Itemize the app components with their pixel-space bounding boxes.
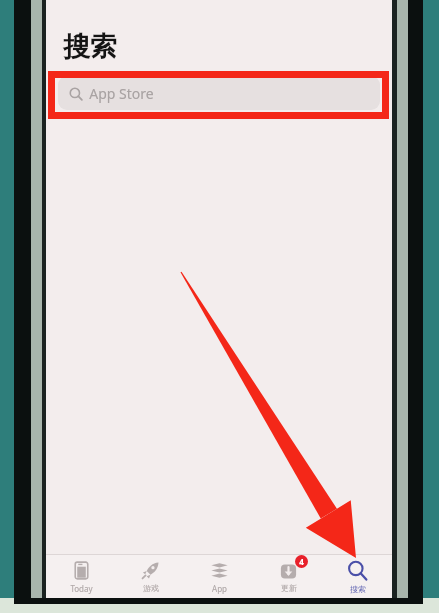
button[interactable]: Games [116,554,185,600]
staticText: 4 [299,556,304,567]
button[interactable]: Search [323,554,392,600]
staticText: 更新 [281,583,297,593]
button[interactable]: Today [46,554,116,600]
staticText: App [212,583,227,594]
staticText: 搜索 [63,30,117,64]
other: Apps [210,561,229,580]
other: Today [72,561,91,580]
button[interactable]: Apps [185,554,254,600]
button[interactable]: App Store [58,76,380,110]
staticText: 搜索 [350,584,366,594]
other: Updates [279,561,298,580]
staticText: Today [70,583,93,594]
other: Search [347,560,368,581]
staticText: 游戏 [143,583,159,593]
other: Games [141,561,160,580]
button[interactable]: Updates [254,554,323,600]
staticText: App Store [89,84,154,103]
